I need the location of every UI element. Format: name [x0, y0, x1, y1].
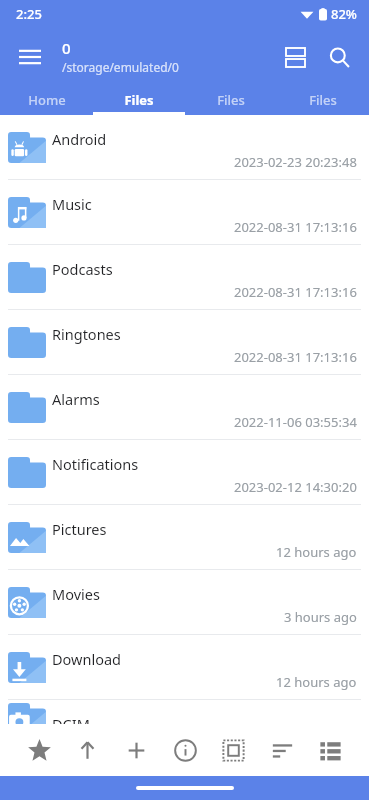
button[interactable]: Sort [260, 728, 304, 772]
button[interactable]: Properties [163, 728, 207, 772]
button[interactable]: Alarms [0, 375, 369, 439]
button[interactable]: View mode [308, 728, 352, 772]
button[interactable]: Android [0, 115, 369, 179]
staticText: 3 hours ago [284, 608, 357, 626]
button[interactable]: Movies [0, 570, 369, 634]
staticText: Notifications [52, 454, 139, 474]
button[interactable]: Pictures [0, 505, 369, 569]
button[interactable]: Go up [65, 728, 109, 772]
button[interactable]: Toggle view [273, 35, 317, 79]
button[interactable]: Search [317, 35, 361, 79]
staticText: DCIM [52, 714, 90, 734]
staticText: 2023-02-12 14:30:20 [234, 478, 357, 496]
staticText: /storage/emulated/0 [62, 59, 179, 75]
staticText: 82% [331, 5, 357, 23]
staticText: 2022-08-31 17:13:16 [234, 348, 357, 366]
button[interactable]: Ringtones [0, 310, 369, 374]
button[interactable]: DCIM [0, 700, 369, 736]
staticText: Files [124, 91, 154, 109]
staticText: Home [28, 91, 66, 109]
button[interactable]: Notifications [0, 440, 369, 504]
staticText: 12 hours ago [276, 673, 357, 691]
staticText: Download [52, 649, 121, 669]
staticText: Android [52, 129, 107, 149]
staticText: Files [309, 91, 337, 109]
staticText: Alarms [52, 389, 100, 409]
button[interactable]: Music [0, 180, 369, 244]
staticText: Podcasts [52, 259, 113, 279]
button[interactable]: Files [185, 85, 277, 115]
staticText: 2022-08-31 17:13:16 [234, 283, 357, 301]
staticText: 2022-08-31 17:13:16 [234, 218, 357, 236]
staticText: Music [52, 194, 92, 214]
staticText: 12 hours ago [276, 543, 357, 561]
staticText: Movies [52, 584, 100, 604]
button[interactable]: Files [277, 85, 369, 115]
button[interactable]: Add [114, 728, 158, 772]
staticText: Pictures [52, 519, 107, 539]
staticText: Files [217, 91, 245, 109]
staticText: 2023-02-23 20:23:48 [234, 153, 357, 171]
staticText: 2022-11-06 03:55:34 [234, 413, 357, 431]
staticText: 2:25 [16, 5, 42, 23]
button[interactable]: Select all [211, 728, 255, 772]
staticText: 0 [62, 38, 71, 58]
button[interactable]: Files [93, 85, 185, 115]
button[interactable]: Home [0, 85, 93, 115]
staticText: Ringtones [52, 324, 121, 344]
button[interactable]: Podcasts [0, 245, 369, 309]
button[interactable]: Open navigation menu [10, 37, 50, 77]
button[interactable]: Download [0, 635, 369, 699]
button[interactable]: Favorites [17, 728, 61, 772]
